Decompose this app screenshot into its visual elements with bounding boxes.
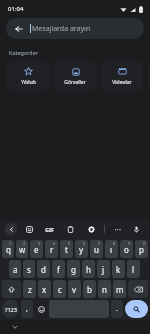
staticText: 2 bbox=[23, 241, 26, 246]
button[interactable]: Emoji bbox=[35, 300, 47, 318]
staticText: f bbox=[57, 264, 60, 275]
staticText: y bbox=[79, 244, 84, 255]
button[interactable]: s bbox=[23, 260, 35, 278]
button[interactable]: Yıldızlı bbox=[7, 61, 49, 91]
button[interactable]: d bbox=[37, 260, 50, 278]
staticText: v bbox=[72, 284, 77, 295]
staticText: 7 bbox=[98, 241, 101, 246]
staticText: ⋯ bbox=[114, 226, 121, 234]
staticText: 8 bbox=[113, 241, 116, 246]
staticText: u bbox=[94, 244, 99, 255]
staticText: d bbox=[41, 264, 46, 275]
staticText: p bbox=[139, 244, 144, 255]
staticText: Videolar bbox=[112, 79, 132, 86]
button[interactable]: ?123 bbox=[2, 300, 19, 318]
staticText: e bbox=[34, 244, 39, 255]
button[interactable]: Videolar bbox=[101, 61, 143, 91]
button[interactable]: Search bbox=[125, 300, 148, 318]
button[interactable]: 2 bbox=[16, 240, 28, 258]
button[interactable]: 0 bbox=[135, 240, 148, 258]
button[interactable]: . bbox=[111, 300, 123, 318]
staticText: 1 bbox=[9, 241, 12, 246]
button[interactable]: 9 bbox=[120, 240, 133, 258]
staticText: b bbox=[87, 284, 92, 295]
button[interactable]: z bbox=[23, 280, 36, 298]
staticText: h bbox=[86, 264, 91, 275]
staticText: ı bbox=[110, 244, 113, 255]
staticText: 01:04 bbox=[8, 5, 24, 13]
staticText: ?123 bbox=[5, 306, 17, 313]
staticText: a bbox=[13, 264, 18, 275]
staticText: 0 bbox=[143, 241, 146, 246]
button[interactable]: 1 bbox=[2, 240, 14, 258]
button[interactable]: f bbox=[52, 260, 65, 278]
staticText: c bbox=[58, 284, 62, 295]
staticText: GIF bbox=[45, 226, 55, 233]
button[interactable]: x bbox=[38, 280, 51, 298]
staticText: Kategoriler bbox=[9, 49, 38, 56]
button[interactable]: n bbox=[98, 280, 111, 298]
button[interactable]: 8 bbox=[105, 240, 118, 258]
staticText: l bbox=[132, 264, 135, 275]
button[interactable]: l bbox=[127, 260, 140, 278]
button[interactable]: Shift bbox=[2, 280, 21, 298]
button[interactable]: Hide keyboard bbox=[10, 322, 20, 332]
staticText: Görseller bbox=[64, 79, 86, 86]
button[interactable]: More options bbox=[111, 223, 124, 236]
staticText: Mesajlarda arayın bbox=[32, 24, 91, 34]
button[interactable]: 6 bbox=[75, 240, 88, 258]
staticText: z bbox=[28, 284, 32, 295]
button[interactable]: a bbox=[9, 260, 21, 278]
staticText: j bbox=[102, 264, 105, 275]
staticText: 9 bbox=[128, 241, 131, 246]
button[interactable]: Back bbox=[6, 18, 144, 39]
button[interactable]: c bbox=[53, 280, 66, 298]
staticText: x bbox=[42, 284, 47, 295]
button[interactable]: Clipboard bbox=[64, 223, 77, 236]
button[interactable]: Görseller bbox=[54, 61, 96, 91]
staticText: 4 bbox=[53, 241, 56, 246]
button[interactable]: Back bbox=[5, 223, 17, 235]
button[interactable]: j bbox=[97, 260, 110, 278]
button[interactable]: Stickers bbox=[23, 223, 36, 236]
button[interactable]: 5 bbox=[60, 240, 73, 258]
button[interactable]: 7 bbox=[90, 240, 103, 258]
staticText: m bbox=[116, 284, 124, 295]
button[interactable]: Voice input bbox=[130, 223, 143, 236]
button[interactable]: Settings bbox=[85, 223, 98, 236]
button[interactable]: g bbox=[67, 260, 80, 278]
button[interactable]: , bbox=[21, 300, 33, 318]
button[interactable]: h bbox=[82, 260, 95, 278]
staticText: 5 bbox=[68, 241, 71, 246]
staticText: w bbox=[19, 244, 26, 255]
button[interactable]: m bbox=[113, 280, 126, 298]
staticText: r bbox=[50, 244, 54, 255]
button[interactable]: GIF bbox=[43, 224, 57, 235]
button[interactable]: 3 bbox=[30, 240, 43, 258]
staticText: 6 bbox=[83, 241, 86, 246]
staticText: q bbox=[6, 244, 11, 255]
staticText: t bbox=[65, 244, 68, 255]
button[interactable]: v bbox=[68, 280, 81, 298]
staticText: Yıldızlı bbox=[21, 79, 36, 86]
staticText: n bbox=[102, 284, 107, 295]
staticText: . bbox=[116, 304, 118, 314]
staticText: s bbox=[27, 264, 31, 275]
button[interactable]: 4 bbox=[45, 240, 58, 258]
staticText: k bbox=[116, 264, 121, 275]
staticText: g bbox=[71, 264, 76, 275]
button[interactable]: Backspace bbox=[128, 280, 148, 298]
button[interactable]: k bbox=[112, 260, 125, 278]
staticText: o bbox=[124, 244, 129, 255]
staticText: , bbox=[26, 304, 28, 314]
staticText: 3 bbox=[38, 241, 41, 246]
button[interactable]: b bbox=[83, 280, 96, 298]
button[interactable]: Back bbox=[13, 23, 25, 35]
